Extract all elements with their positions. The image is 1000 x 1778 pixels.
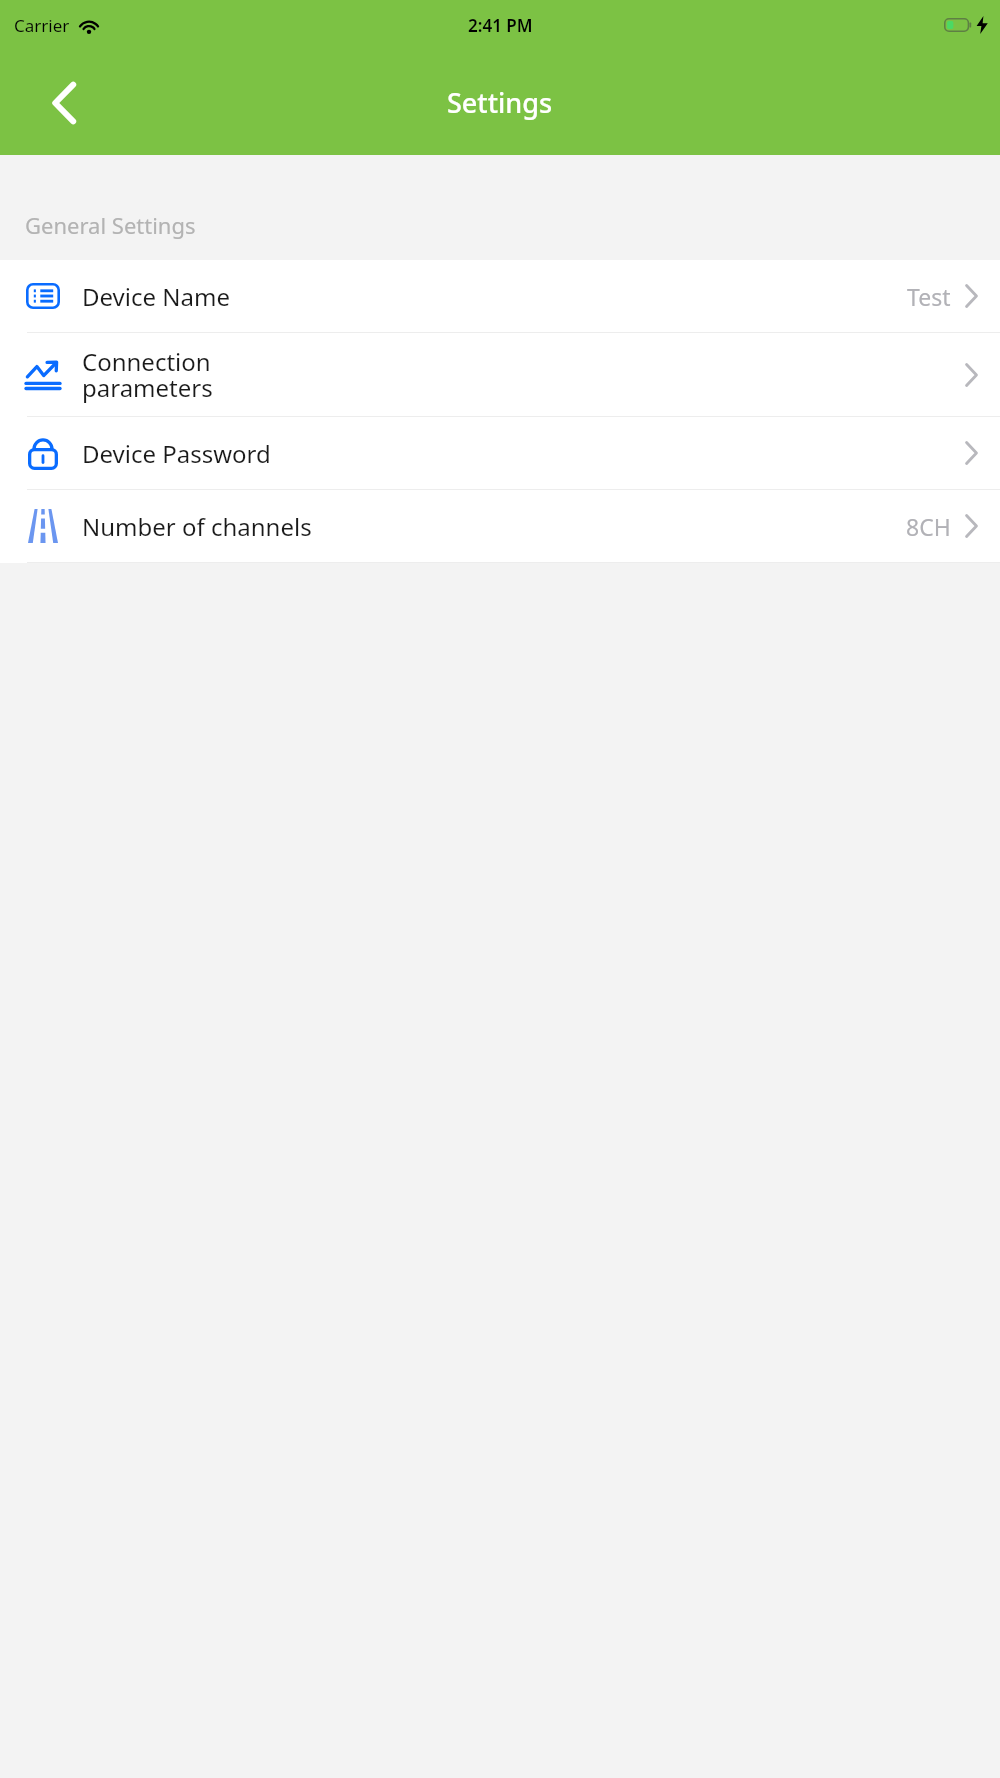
staticText: Device Name [82,280,230,313]
button[interactable]: Back [36,75,92,131]
staticText: Number of channels [82,510,312,543]
button[interactable]: Device Password [0,417,1000,489]
staticText: Test [907,281,951,312]
staticText: Carrier [14,14,70,37]
staticText: 8CH [906,511,951,542]
button[interactable]: Device Name [0,260,1000,332]
staticText: Device Password [82,437,271,470]
button[interactable]: Connection parameters [0,333,1000,416]
staticText: General Settings [25,210,196,240]
button[interactable]: Number of channels [0,490,1000,562]
staticText: Settings [447,84,553,121]
staticText: Connection parameters [82,345,213,404]
staticText: 2:41 PM [468,14,533,37]
